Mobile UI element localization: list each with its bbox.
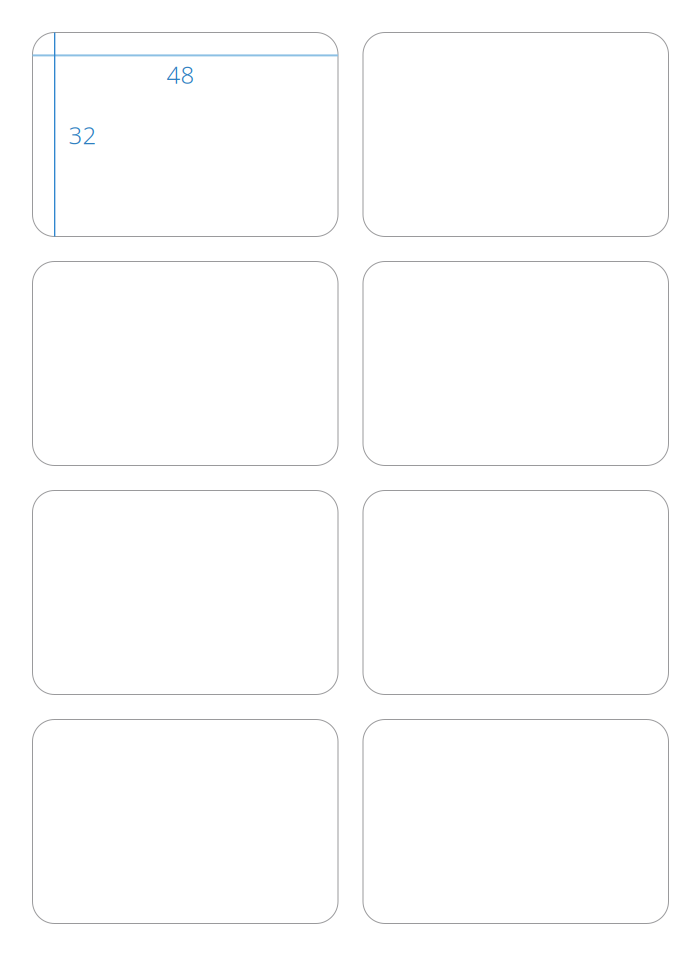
button[interactable]: Card 2 (363, 32, 668, 236)
button[interactable]: Card 8 (363, 719, 668, 923)
button[interactable]: Card 7 (32, 719, 338, 923)
button[interactable]: Card 3 (32, 261, 338, 465)
button[interactable]: Card 4 (363, 261, 668, 465)
staticText: 32 (68, 119, 96, 151)
button[interactable]: Card 5 (32, 490, 338, 694)
button[interactable]: Card 6 (363, 490, 668, 694)
staticText: 48 (166, 58, 194, 90)
button[interactable]: Card 1, spacing 48 by 32 (32, 32, 338, 236)
